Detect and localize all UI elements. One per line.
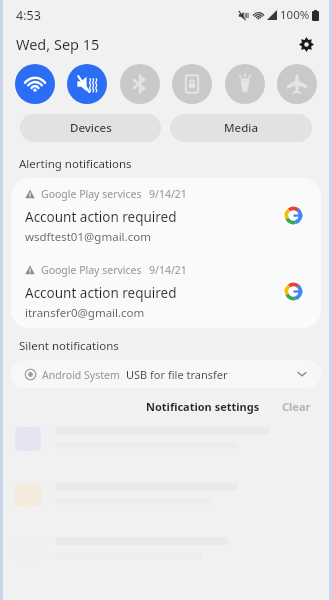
- staticText: Google Play services: [41, 187, 142, 201]
- staticText: Media: [224, 120, 258, 136]
- staticText: 100%: [280, 7, 310, 23]
- staticText: Alerting notifications: [19, 156, 132, 172]
- button[interactable]: Devices: [20, 114, 161, 142]
- staticText: 9/14/21: [149, 187, 187, 201]
- button[interactable]: Notification settings: [142, 396, 264, 417]
- button[interactable]: Google Play services: [11, 254, 321, 328]
- staticText: Clear: [282, 399, 311, 414]
- staticText: Account action required: [25, 284, 177, 302]
- button[interactable]: Mute: [67, 64, 107, 104]
- button[interactable]: Wi-Fi: [15, 64, 55, 104]
- button[interactable]: Airplane mode: [277, 64, 317, 104]
- button[interactable]: Media: [170, 114, 312, 142]
- staticText: Google Play services: [41, 263, 142, 277]
- staticText: wsdftest01@gmail.com: [25, 229, 151, 245]
- staticText: Devices: [70, 120, 112, 136]
- staticText: 4:53: [16, 7, 41, 24]
- button[interactable]: Flashlight: [225, 64, 265, 104]
- button[interactable]: Android System: [11, 360, 321, 388]
- staticText: Android System: [42, 368, 120, 382]
- staticText: 9/14/21: [149, 263, 187, 277]
- staticText: Silent notifications: [19, 338, 119, 354]
- staticText: Notification settings: [146, 399, 260, 414]
- staticText: Account action required: [25, 208, 177, 226]
- button[interactable]: Clear: [278, 396, 315, 417]
- button[interactable]: Google Play services: [11, 178, 321, 252]
- button[interactable]: Bluetooth: [120, 64, 160, 104]
- staticText: itransfer0@gmail.com: [25, 305, 145, 321]
- button[interactable]: Settings: [293, 31, 319, 57]
- staticText: USB for file transfer: [126, 367, 228, 382]
- button[interactable]: Auto rotate: [172, 64, 212, 104]
- staticText: Wed, Sep 15: [16, 34, 100, 54]
